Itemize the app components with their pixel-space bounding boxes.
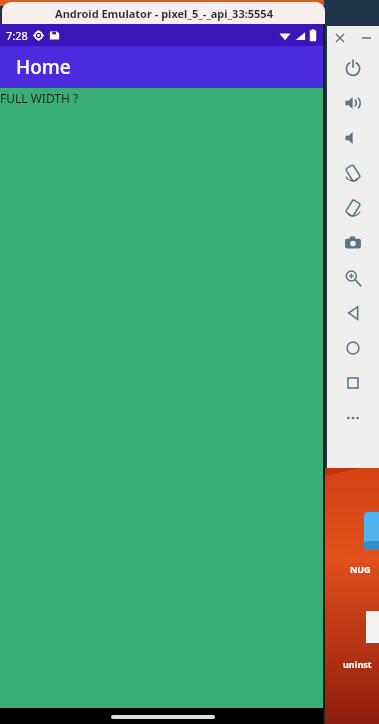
button[interactable]: Close [327,26,353,50]
button[interactable]: Rotate right [327,190,379,225]
staticText: Home [16,54,71,80]
staticText: uninst [343,658,372,670]
button[interactable]: Rotate left [327,155,379,190]
button[interactable]: Volume down [327,120,379,155]
staticText: Android Emulator - pixel_5_-_api_33:5554 [55,6,273,21]
button[interactable]: Power [327,50,379,85]
button[interactable]: Take screenshot [327,225,379,260]
button[interactable]: Zoom [327,260,379,295]
button[interactable]: More [327,400,379,435]
staticText: FULL WIDTH ? [0,90,79,106]
button[interactable]: Volume up [327,85,379,120]
button[interactable]: Back [327,295,379,330]
button[interactable]: Overview [327,365,379,400]
button[interactable]: Home [327,330,379,365]
button[interactable]: Minimize [353,26,379,50]
button[interactable]: Home [0,46,325,88]
staticText: NUG [350,563,371,575]
staticText: 7:28 [6,28,28,43]
button[interactable]: Home gesture [111,715,215,719]
